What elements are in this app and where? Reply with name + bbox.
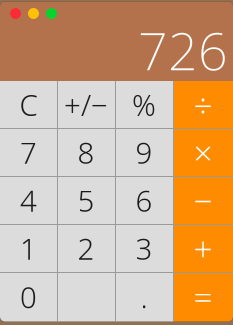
staticText: +/−	[64, 85, 108, 124]
button[interactable]: 0	[0, 272, 115, 321]
button[interactable]: Add	[173, 224, 233, 272]
button[interactable]: .	[115, 272, 173, 321]
button[interactable]: Minimize	[28, 8, 39, 19]
button[interactable]: Multiply	[173, 128, 233, 176]
staticText: C	[19, 85, 37, 124]
staticText: 1	[20, 229, 37, 268]
button[interactable]: 1	[0, 224, 57, 272]
button[interactable]: 4	[0, 176, 57, 224]
button[interactable]: %	[115, 81, 173, 128]
button[interactable]: 6	[115, 176, 173, 224]
staticText: 9	[135, 133, 152, 172]
staticText: 726	[138, 15, 228, 84]
staticText: =	[193, 275, 212, 319]
staticText: 0	[20, 277, 37, 316]
button[interactable]: Equals	[173, 272, 233, 321]
staticText: %	[132, 85, 156, 124]
button[interactable]: +/−	[57, 81, 115, 128]
staticText: 2	[77, 229, 94, 268]
staticText: +	[193, 226, 212, 270]
button[interactable]: 7	[0, 128, 57, 176]
staticText: −	[193, 178, 212, 222]
button[interactable]: 2	[57, 224, 115, 272]
staticText: 4	[20, 181, 37, 220]
button[interactable]: Close	[10, 8, 21, 19]
staticText: 5	[77, 181, 94, 220]
button[interactable]: Zoom	[46, 8, 57, 19]
staticText: ×	[193, 130, 212, 174]
button[interactable]: C	[0, 81, 57, 128]
button[interactable]: 8	[57, 128, 115, 176]
button[interactable]: Subtract	[173, 176, 233, 224]
staticText: 8	[77, 133, 94, 172]
staticText: 6	[135, 181, 152, 220]
staticText: 3	[135, 229, 152, 268]
button[interactable]: 5	[57, 176, 115, 224]
button[interactable]: Divide	[173, 81, 233, 128]
staticText: ÷	[193, 82, 212, 127]
staticText: 7	[20, 133, 37, 172]
button[interactable]: 3	[115, 224, 173, 272]
staticText: .	[140, 277, 147, 316]
button[interactable]: 9	[115, 128, 173, 176]
